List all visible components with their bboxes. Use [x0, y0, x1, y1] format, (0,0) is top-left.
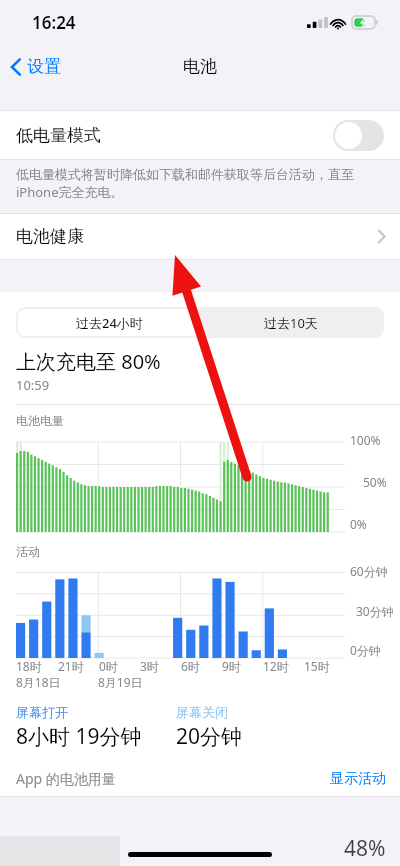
button[interactable]: 低电量模式	[0, 111, 400, 159]
staticText: 10:59	[16, 376, 50, 394]
staticText: 低电量模式将暂时降低如下载和邮件获取等后台活动，直至 iPhone完全充电。	[16, 166, 354, 201]
button[interactable]: 过去10天	[200, 309, 382, 336]
staticText: 8小时 19分钟	[16, 722, 142, 751]
staticText: 0时	[99, 658, 118, 674]
staticText: App 的电池用量	[16, 769, 116, 788]
staticText: 9时	[222, 658, 241, 674]
staticText: 60分钟	[350, 563, 388, 579]
button[interactable]: 显示活动	[330, 770, 386, 788]
staticText: 6时	[181, 658, 200, 674]
staticText: 过去10天	[264, 314, 318, 332]
staticText: 3时	[140, 658, 159, 674]
staticText: 20分钟	[176, 722, 243, 751]
staticText: 12时	[263, 658, 289, 674]
staticText: 18时	[16, 658, 42, 674]
staticText: 电池健康	[16, 226, 84, 247]
staticText: 电池电量	[16, 413, 64, 428]
staticText: 8月18日	[16, 674, 61, 690]
staticText: 100%	[350, 432, 381, 448]
staticText: 显示活动	[330, 770, 386, 788]
staticText: 低电量模式	[16, 125, 101, 146]
staticText: 屏幕打开	[16, 704, 68, 720]
button[interactable]: 过去24小时	[18, 309, 200, 336]
staticText: 8月19日	[98, 674, 143, 690]
staticText: 设置	[27, 56, 61, 77]
staticText: 50%	[363, 474, 387, 490]
staticText: 活动	[16, 544, 40, 559]
staticText: 屏幕关闭	[176, 704, 228, 720]
staticText: 16:24	[32, 11, 76, 34]
button[interactable]: 低电量模式开关	[333, 120, 384, 151]
staticText: 15时	[304, 658, 330, 674]
staticText: 0分钟	[350, 642, 381, 658]
staticText: 上次充电至 80%	[16, 348, 161, 375]
staticText: 0%	[350, 516, 367, 532]
button[interactable]: 设置	[0, 50, 73, 83]
staticText: 48%	[344, 834, 386, 863]
button[interactable]: 电池健康	[0, 214, 400, 259]
staticText: 30分钟	[356, 603, 394, 619]
staticText: 过去24小时	[76, 314, 143, 332]
staticText: 电池	[183, 56, 217, 77]
staticText: 21时	[58, 658, 84, 674]
